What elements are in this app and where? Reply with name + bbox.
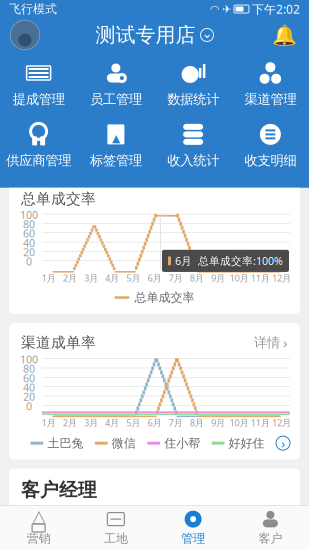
staticText: 6月 [147,416,161,429]
staticText: 11月 [251,272,270,284]
staticText: 2月 [63,416,77,429]
staticText: 0 [26,254,32,269]
staticText: 3月 [84,272,98,284]
staticText: 9月 [211,272,225,284]
button[interactable]: 详情 [254,333,288,352]
staticText: 7月 [169,416,183,429]
staticText: 客户经理 [21,478,97,501]
staticText: 测试专用店 [95,23,195,47]
staticText: 2月 [63,272,77,284]
staticText: 60 [23,371,35,385]
button[interactable]: 下一页 [276,436,290,450]
button[interactable]: △ [0,505,77,550]
staticText: ⌄ [201,26,212,41]
staticText: 总单成交率 [21,190,96,208]
staticText: 1月 [42,416,56,429]
button[interactable]: 渠道管理 [232,58,309,110]
staticText: 提成管理 [13,91,65,107]
staticText: 标签管理 [90,152,142,169]
staticText: 住小帮 [164,436,200,450]
button[interactable]: 供应商管理 [0,119,77,172]
staticText: 供应商管理 [6,152,71,169]
staticText: 20 [23,390,35,404]
staticText: ✈ [222,3,231,15]
staticText: 总单成交率 [134,290,194,305]
button[interactable]: 收支明细 [232,119,309,172]
staticText: 10月 [230,272,249,284]
staticText: 12月 [272,416,291,429]
staticText: 微信 [112,436,136,450]
staticText: 土巴兔 [47,436,83,450]
staticText: 收支明细 [244,152,296,169]
staticText: 5月 [126,272,140,284]
staticText: 10月 [230,416,249,429]
staticText: 5月 [126,416,140,429]
button[interactable]: 客户经理 [21,509,67,550]
staticText: 飞行模式 [9,2,57,16]
staticText: 下午2:02 [252,1,300,17]
staticText: 1月 [42,272,56,284]
staticText: 数据统计 [167,91,219,107]
staticText: 100 [20,352,38,366]
staticText: 100 [20,208,38,222]
staticText: 7月 [169,272,183,284]
staticText: › [281,434,285,452]
staticText: 收入统计 [167,152,219,169]
staticText: 80 [23,217,35,231]
staticText: 🔔 [271,24,296,46]
staticText: 40 [23,236,35,250]
button[interactable]: 工地 [77,505,154,550]
button[interactable]: 提成管理 [0,58,77,110]
button[interactable]: ▲ [77,119,154,172]
button[interactable]: 管理 [154,505,232,550]
staticText: 9月 [211,416,225,429]
staticText: 4月 [105,272,119,284]
staticText: 8月 [190,416,204,429]
staticText: 11月 [251,416,270,429]
staticText: 好好住 [229,436,265,450]
staticText: 管理 [181,531,205,546]
staticText: 12月 [272,272,291,284]
staticText: 0 [26,399,32,413]
staticText: 8月 [190,272,204,284]
button[interactable]: 员工管理 [77,58,154,110]
staticText: 营销 [27,531,51,546]
staticText: 渠道管理 [244,91,296,107]
staticText: 40 [23,380,35,394]
button[interactable]: 测试专用店 [95,23,213,47]
staticText: 详情 [254,334,280,351]
staticText: ◠ [210,3,219,15]
staticText: △ [32,506,45,526]
staticText: 80 [23,362,35,376]
staticText: 4月 [105,416,119,429]
staticText: 客户 [258,531,282,546]
staticText: 渠道成单率 [21,334,96,352]
staticText: › [283,333,288,352]
button[interactable]: 通知 [269,20,299,50]
staticText: 6月 总单成交率:100% [175,254,283,268]
staticText: 20 [23,245,35,259]
button[interactable]: 收入统计 [154,119,232,172]
button[interactable]: 客户 [232,505,309,550]
staticText: 工地 [104,531,128,546]
staticText: 60 [23,226,35,241]
button[interactable]: 数据统计 [154,58,232,110]
button[interactable]: 用户头像 [10,20,40,50]
staticText: 3月 [84,416,98,429]
staticText: 6月 [147,272,161,284]
staticText: ▲ [112,132,120,144]
staticText: 员工管理 [90,91,142,107]
